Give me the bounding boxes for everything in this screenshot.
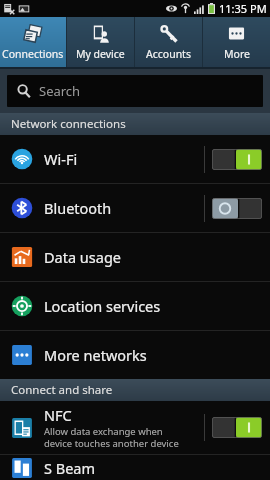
staticText: Location services [44,296,161,316]
button[interactable]: Accounts [135,17,202,67]
button[interactable]: Wi-Fi [0,135,270,183]
staticText: S Beam [44,458,96,478]
button[interactable]: Location services [0,282,270,330]
staticText: Allow data exchange when device touches … [44,425,179,450]
staticText: NFC [44,405,72,425]
button[interactable]: Switch off [212,198,262,219]
staticText: More [224,47,250,61]
staticText: Connect and share [11,382,113,398]
staticText: Data usage [44,247,121,267]
staticText: My device [76,47,125,61]
button[interactable]: Search [7,75,263,107]
staticText: Search [39,82,81,100]
staticText: Wi-Fi [44,149,78,169]
button[interactable]: Switch on [212,417,262,438]
button[interactable]: Connections [0,17,66,67]
button[interactable]: Data usage [0,233,270,281]
button[interactable]: Switch on [212,149,262,170]
staticText: Network connections [11,116,126,132]
button[interactable]: More networks [0,331,270,379]
button[interactable]: S Beam [0,455,270,480]
staticText: More networks [44,345,147,365]
button[interactable]: More [203,17,270,67]
button[interactable]: My device [67,17,134,67]
staticText: 11:35 PM [219,1,267,16]
staticText: Connections [2,47,64,61]
staticText: Bluetooth [44,198,112,218]
staticText: Accounts [146,47,191,61]
button[interactable]: NFC [0,401,270,454]
button[interactable]: Bluetooth [0,184,270,232]
